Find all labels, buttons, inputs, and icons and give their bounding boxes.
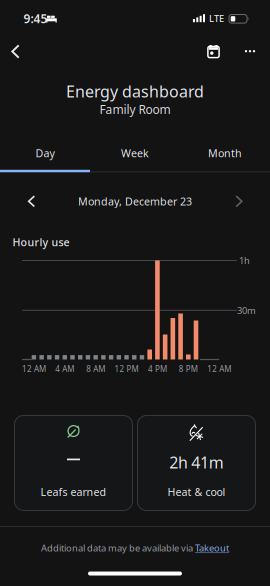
staticText: Monday, December 23	[78, 194, 192, 208]
staticText: Additional data may be available via	[41, 542, 195, 554]
staticText: 9:45	[23, 10, 47, 26]
button[interactable]: Previous day	[21, 188, 42, 214]
staticText: Day	[35, 146, 54, 160]
staticText: 12 AM	[207, 364, 231, 374]
button[interactable]: Choose date	[202, 39, 225, 64]
staticText: 12 AM	[22, 364, 46, 374]
staticText: Hourly use	[12, 235, 69, 249]
button[interactable]: Week	[90, 136, 180, 170]
staticText: 4 PM	[148, 364, 167, 374]
button[interactable]: Back	[4, 37, 27, 66]
staticText: 8 AM	[86, 364, 105, 374]
staticText: Takeout	[195, 542, 229, 554]
staticText: Month	[208, 146, 242, 160]
staticText: Heat & cool	[167, 485, 225, 499]
staticText: LTE	[209, 12, 224, 25]
button[interactable]: Day	[0, 136, 90, 170]
staticText: 30m	[237, 304, 256, 316]
button[interactable]: More options	[239, 44, 261, 58]
staticText: Family Room	[99, 101, 170, 117]
button[interactable]: Month	[180, 136, 270, 170]
staticText: 2h 41m	[169, 451, 224, 473]
staticText: Leafs earned	[40, 485, 106, 499]
staticText: 1h	[239, 254, 250, 267]
staticText: Week	[121, 146, 149, 160]
button[interactable]: Takeout	[195, 542, 229, 554]
staticText: 12 PM	[114, 364, 138, 374]
staticText: Energy dashboard	[66, 81, 204, 102]
button[interactable]: Leafs earned	[14, 415, 132, 510]
button[interactable]: Next day	[228, 188, 250, 214]
staticText: 4 AM	[55, 364, 74, 374]
button[interactable]: 2h 41m	[137, 415, 255, 510]
staticText: 8 PM	[179, 364, 198, 374]
